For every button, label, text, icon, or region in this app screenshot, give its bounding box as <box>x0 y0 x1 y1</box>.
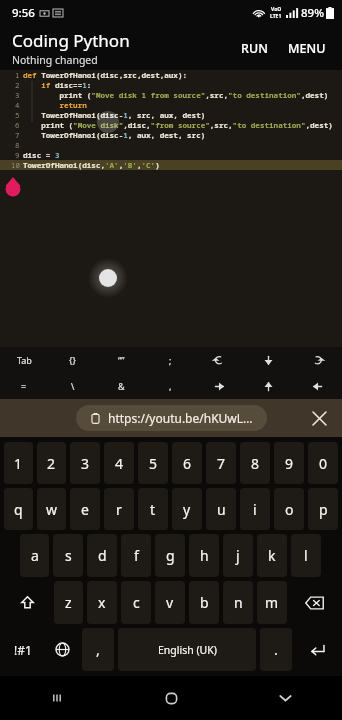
staticText: TowerOfHanoi(disc,'A','B','C') <box>23 160 160 170</box>
staticText: v <box>166 593 174 612</box>
button[interactable]: z <box>54 581 83 624</box>
button[interactable]: l <box>291 534 321 577</box>
button[interactable]: m <box>257 581 287 624</box>
button[interactable]: k <box>257 534 287 577</box>
button[interactable]: v <box>155 581 185 624</box>
staticText: 3 <box>81 454 90 473</box>
button[interactable]: d <box>87 534 117 577</box>
button[interactable]: s <box>53 534 83 577</box>
staticText: n <box>234 593 243 612</box>
button[interactable]: Hide keyboard <box>228 676 342 720</box>
button[interactable]: , <box>146 373 195 399</box>
staticText: . <box>274 640 278 659</box>
staticText: TowerOfHanoi(disc-1, aux, dest, src) <box>23 130 206 140</box>
button[interactable]: g <box>155 534 185 577</box>
button[interactable]: 0 <box>308 442 338 484</box>
staticText: Coding Python <box>12 29 130 52</box>
staticText: 1 <box>15 70 20 80</box>
staticText: 1 <box>14 454 23 473</box>
button[interactable]: \ <box>48 373 97 399</box>
button[interactable]: {} <box>48 347 97 373</box>
button[interactable]: w <box>37 488 66 530</box>
button[interactable]: 2 <box>37 442 66 484</box>
button[interactable]: RUN <box>235 35 274 62</box>
button[interactable]: a <box>20 534 49 577</box>
button[interactable]: MENU <box>282 35 332 62</box>
button[interactable]: Home <box>114 676 228 720</box>
button[interactable]: t <box>138 488 168 530</box>
button[interactable]: ; <box>146 347 195 373</box>
button[interactable]: p <box>308 488 338 530</box>
button[interactable]: j <box>223 534 253 577</box>
staticText: 89% <box>301 5 324 21</box>
button[interactable]: Tab <box>0 347 48 373</box>
staticText: , <box>169 380 172 392</box>
button[interactable]: 4 <box>104 442 134 484</box>
button[interactable]: https://youtu.be/hKUwL… <box>76 405 267 431</box>
button[interactable]: e <box>70 488 100 530</box>
button[interactable]: Recent apps <box>0 676 114 720</box>
button[interactable]: r <box>104 488 134 530</box>
staticText: 10 <box>11 160 20 170</box>
staticText: 8 <box>15 140 20 150</box>
button[interactable]: up <box>244 347 293 373</box>
staticText: Nothing changed <box>12 53 98 67</box>
button[interactable]: Dismiss suggestion <box>304 403 334 433</box>
button[interactable]: redo <box>293 347 342 373</box>
staticText: , <box>96 640 100 659</box>
staticText: VoO <box>271 6 282 13</box>
staticText: a <box>31 546 39 565</box>
button[interactable]: undo <box>195 347 244 373</box>
button[interactable]: n <box>223 581 253 624</box>
staticText: print ("Move disk",disc,"from source",sr… <box>23 120 333 130</box>
button[interactable]: = <box>0 373 48 399</box>
button[interactable]: English (UK) <box>118 628 256 671</box>
staticText: d <box>98 546 107 565</box>
button[interactable]: i <box>240 488 270 530</box>
staticText: x <box>98 593 106 612</box>
staticText: 3 <box>15 90 20 100</box>
button[interactable]: down <box>244 373 293 399</box>
button[interactable]: q <box>4 488 33 530</box>
button[interactable]: Backspace <box>291 581 338 624</box>
button[interactable]: 6 <box>172 442 202 484</box>
button[interactable]: h <box>189 534 219 577</box>
button[interactable]: o <box>274 488 304 530</box>
button[interactable]: . <box>260 628 292 671</box>
staticText: f <box>134 546 139 565</box>
button[interactable]: f <box>121 534 151 577</box>
staticText: \ <box>71 380 75 392</box>
button[interactable]: 8 <box>240 442 270 484</box>
staticText: r <box>116 500 122 519</box>
button[interactable]: & <box>97 373 146 399</box>
button[interactable]: Symbols <box>4 628 42 671</box>
staticText: 9 <box>285 454 294 473</box>
button[interactable]: 1 <box>4 442 33 484</box>
staticText: l <box>304 546 308 565</box>
button[interactable]: Enter <box>296 628 338 671</box>
staticText: b <box>200 593 209 612</box>
staticText: Tab <box>17 354 32 366</box>
staticText: 2 <box>47 454 56 473</box>
button[interactable]: c <box>121 581 151 624</box>
button[interactable]: “” <box>97 347 146 373</box>
button[interactable]: b <box>189 581 219 624</box>
staticText: def TowerOfHanoi(disc,src,dest,aux): <box>23 70 188 80</box>
staticText: English (UK) <box>158 643 217 657</box>
button[interactable]: 3 <box>70 442 100 484</box>
button[interactable]: u <box>206 488 236 530</box>
button[interactable]: right <box>293 373 342 399</box>
button[interactable]: , <box>82 628 114 671</box>
button[interactable]: Language <box>46 628 78 671</box>
staticText: 6 <box>183 454 192 473</box>
button[interactable]: 9 <box>274 442 304 484</box>
button[interactable]: 7 <box>206 442 236 484</box>
button[interactable]: 5 <box>138 442 168 484</box>
button[interactable]: left <box>195 373 244 399</box>
staticText: = <box>21 380 27 392</box>
button[interactable]: Shift <box>4 581 50 624</box>
staticText: 6 <box>15 120 20 130</box>
button[interactable]: x <box>87 581 117 624</box>
staticText: e <box>81 500 89 519</box>
button[interactable]: y <box>172 488 202 530</box>
